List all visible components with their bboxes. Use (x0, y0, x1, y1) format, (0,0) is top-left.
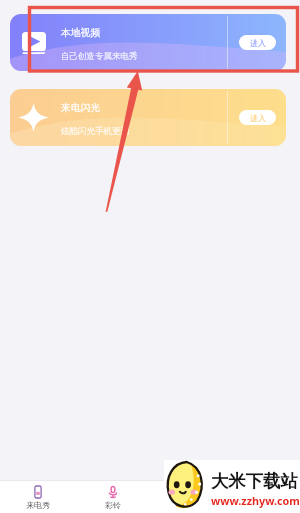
staticText: 来电秀 (26, 500, 50, 510)
staticText: 大米下载站 (211, 470, 298, 492)
button[interactable]: 彩铃 (75, 481, 150, 513)
staticText: 来电闪光 (61, 102, 101, 114)
staticText: www.zzhyw.com (211, 493, 300, 508)
staticText: 本地视频 (61, 27, 101, 39)
staticText: 进入 (250, 113, 266, 123)
button[interactable]: 来电闪光 (10, 89, 286, 146)
button[interactable]: 来电秀 (0, 481, 75, 513)
button[interactable]: 本地视频 (10, 14, 286, 71)
staticText: 进入 (250, 38, 266, 48)
staticText: 炫酷闪光手机更潮 (61, 126, 129, 137)
button[interactable]: tab (225, 481, 300, 513)
button[interactable]: 进入 (239, 35, 276, 50)
staticText: 彩铃 (105, 500, 121, 510)
button[interactable]: 进入 (239, 110, 276, 125)
staticText: 自己创造专属来电秀 (61, 51, 138, 62)
button[interactable]: tab (150, 481, 225, 513)
